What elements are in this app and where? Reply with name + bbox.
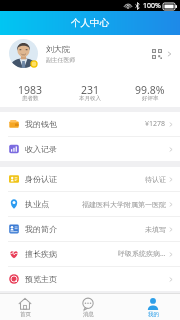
button[interactable]: 预览主页	[0, 267, 180, 291]
staticText: 福建医科大学附属第一医院	[82, 200, 166, 209]
staticText: 本月收入	[79, 95, 101, 102]
button[interactable]: 执业点	[0, 192, 180, 216]
button[interactable]: 身份认证	[0, 167, 180, 191]
staticText: 231	[81, 83, 100, 97]
button[interactable]: 我的简介	[0, 217, 180, 241]
staticText: 消息	[83, 311, 94, 318]
staticText: 呼吸系统疾病…	[118, 249, 166, 259]
staticText: 患者数	[22, 95, 39, 102]
staticText: 我的	[148, 311, 159, 318]
staticText: 身份认证	[25, 174, 57, 184]
button[interactable]: 我的	[120, 294, 180, 320]
staticText: 100%	[143, 1, 161, 11]
staticText: 个人中心	[71, 17, 109, 29]
staticText: 刘大院	[46, 44, 70, 54]
button[interactable]: 1983	[0, 72, 60, 107]
staticText: 预览主页	[25, 274, 57, 284]
button[interactable]: 消息	[60, 294, 120, 320]
staticText: 待认证	[145, 175, 166, 184]
staticText: 副主任医师	[46, 56, 75, 63]
button[interactable]: 首页	[0, 294, 60, 320]
staticText: ¥1278	[145, 119, 166, 129]
button[interactable]: 二维码名片	[149, 46, 165, 62]
staticText: 我的钱包	[25, 119, 57, 129]
staticText: 首页	[20, 311, 31, 318]
staticText: 擅长疾病	[25, 249, 57, 259]
staticText: 1983	[18, 83, 43, 97]
button[interactable]: 99.8%	[120, 72, 180, 107]
staticText: 执业点	[25, 199, 49, 209]
staticText: 未填写	[145, 225, 166, 234]
button[interactable]: 收入记录	[0, 137, 180, 161]
staticText: 我的简介	[25, 224, 57, 234]
staticText: 99.8%	[135, 83, 165, 97]
button[interactable]: 231	[60, 72, 120, 107]
staticText: 收入记录	[25, 144, 57, 154]
button[interactable]: 刘大院	[0, 35, 180, 72]
button[interactable]: 我的钱包	[0, 112, 180, 136]
button[interactable]: 擅长疾病	[0, 242, 180, 266]
staticText: 好评率	[142, 95, 159, 102]
